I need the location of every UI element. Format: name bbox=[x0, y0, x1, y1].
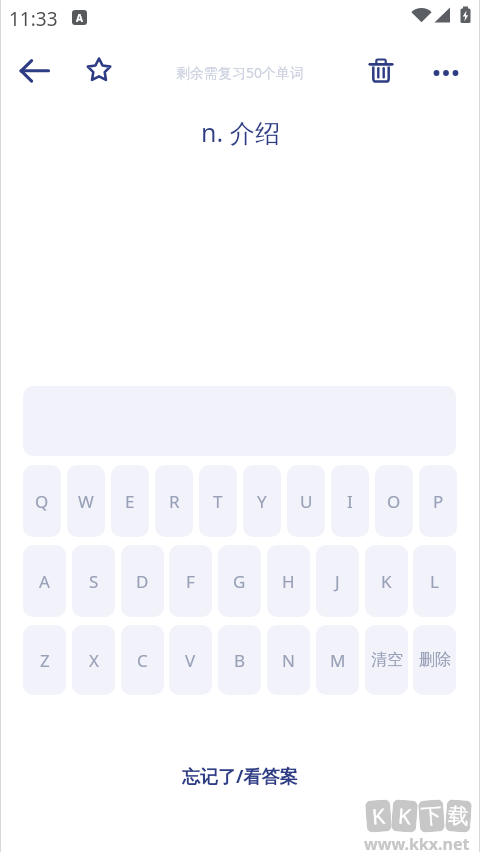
staticText: 删除 bbox=[419, 650, 451, 670]
staticText: 剩余需复习50个单词 bbox=[176, 63, 305, 82]
button[interactable]: Y bbox=[243, 465, 281, 537]
button[interactable]: D bbox=[121, 545, 164, 617]
button[interactable] bbox=[359, 49, 403, 93]
staticText: O bbox=[387, 490, 401, 513]
staticText: F bbox=[186, 570, 195, 593]
staticText: D bbox=[136, 570, 149, 593]
staticText: Z bbox=[40, 649, 50, 672]
staticText: M bbox=[330, 649, 346, 672]
button[interactable]: L bbox=[413, 545, 456, 617]
staticText: R bbox=[169, 490, 180, 513]
staticText: Y bbox=[257, 490, 267, 513]
staticText: T bbox=[213, 490, 223, 513]
button[interactable] bbox=[13, 51, 57, 95]
button[interactable]: P bbox=[419, 465, 457, 537]
button[interactable] bbox=[424, 51, 468, 95]
staticText: V bbox=[185, 649, 196, 672]
staticText: K bbox=[381, 570, 392, 593]
staticText: B bbox=[234, 649, 246, 672]
button[interactable]: M bbox=[316, 625, 359, 695]
staticText: X bbox=[89, 649, 99, 672]
staticText: G bbox=[233, 570, 246, 593]
button[interactable]: T bbox=[199, 465, 237, 537]
staticText: 忘记了/看答案 bbox=[182, 764, 298, 789]
staticText: A bbox=[39, 570, 50, 593]
button[interactable]: E bbox=[111, 465, 149, 537]
staticText: www.kkx.net bbox=[364, 833, 470, 852]
staticText: C bbox=[137, 649, 148, 672]
staticText: 下 bbox=[420, 802, 443, 830]
button[interactable]: A bbox=[23, 545, 66, 617]
button[interactable]: N bbox=[267, 625, 310, 695]
button[interactable]: O bbox=[375, 465, 413, 537]
staticText: n. 介绍 bbox=[201, 115, 280, 149]
button[interactable]: J bbox=[316, 545, 359, 617]
button[interactable]: 删除 bbox=[413, 625, 456, 695]
staticText: A bbox=[76, 11, 83, 25]
staticText: L bbox=[430, 570, 439, 593]
button[interactable]: Z bbox=[23, 625, 66, 695]
button[interactable]: Q bbox=[23, 465, 61, 537]
button[interactable]: 清空 bbox=[365, 625, 408, 695]
button[interactable] bbox=[78, 49, 122, 93]
button[interactable]: 忘记了/看答案 bbox=[0, 764, 480, 789]
staticText: K bbox=[397, 802, 412, 831]
button[interactable]: R bbox=[155, 465, 193, 537]
staticText: I bbox=[347, 490, 353, 513]
button[interactable]: S bbox=[72, 545, 115, 617]
button[interactable]: H bbox=[267, 545, 310, 617]
button[interactable]: V bbox=[169, 625, 212, 695]
staticText: Q bbox=[35, 490, 49, 513]
button[interactable]: X bbox=[72, 625, 115, 695]
staticText: 清空 bbox=[371, 650, 403, 670]
staticText: E bbox=[125, 490, 135, 513]
staticText: 载 bbox=[447, 802, 470, 830]
staticText: N bbox=[282, 649, 295, 672]
button[interactable]: I bbox=[331, 465, 369, 537]
button[interactable]: K bbox=[365, 545, 408, 617]
staticText: W bbox=[78, 490, 94, 513]
staticText: U bbox=[300, 490, 313, 513]
button[interactable]: W bbox=[67, 465, 105, 537]
button[interactable]: F bbox=[169, 545, 212, 617]
staticText: P bbox=[433, 490, 444, 513]
staticText: H bbox=[282, 570, 295, 593]
staticText: 11:33 bbox=[9, 6, 58, 32]
button[interactable]: U bbox=[287, 465, 325, 537]
button[interactable]: B bbox=[218, 625, 261, 695]
button[interactable]: G bbox=[218, 545, 261, 617]
staticText: J bbox=[335, 570, 340, 593]
staticText: K bbox=[371, 802, 386, 831]
button[interactable]: C bbox=[121, 625, 164, 695]
staticText: S bbox=[89, 570, 99, 593]
